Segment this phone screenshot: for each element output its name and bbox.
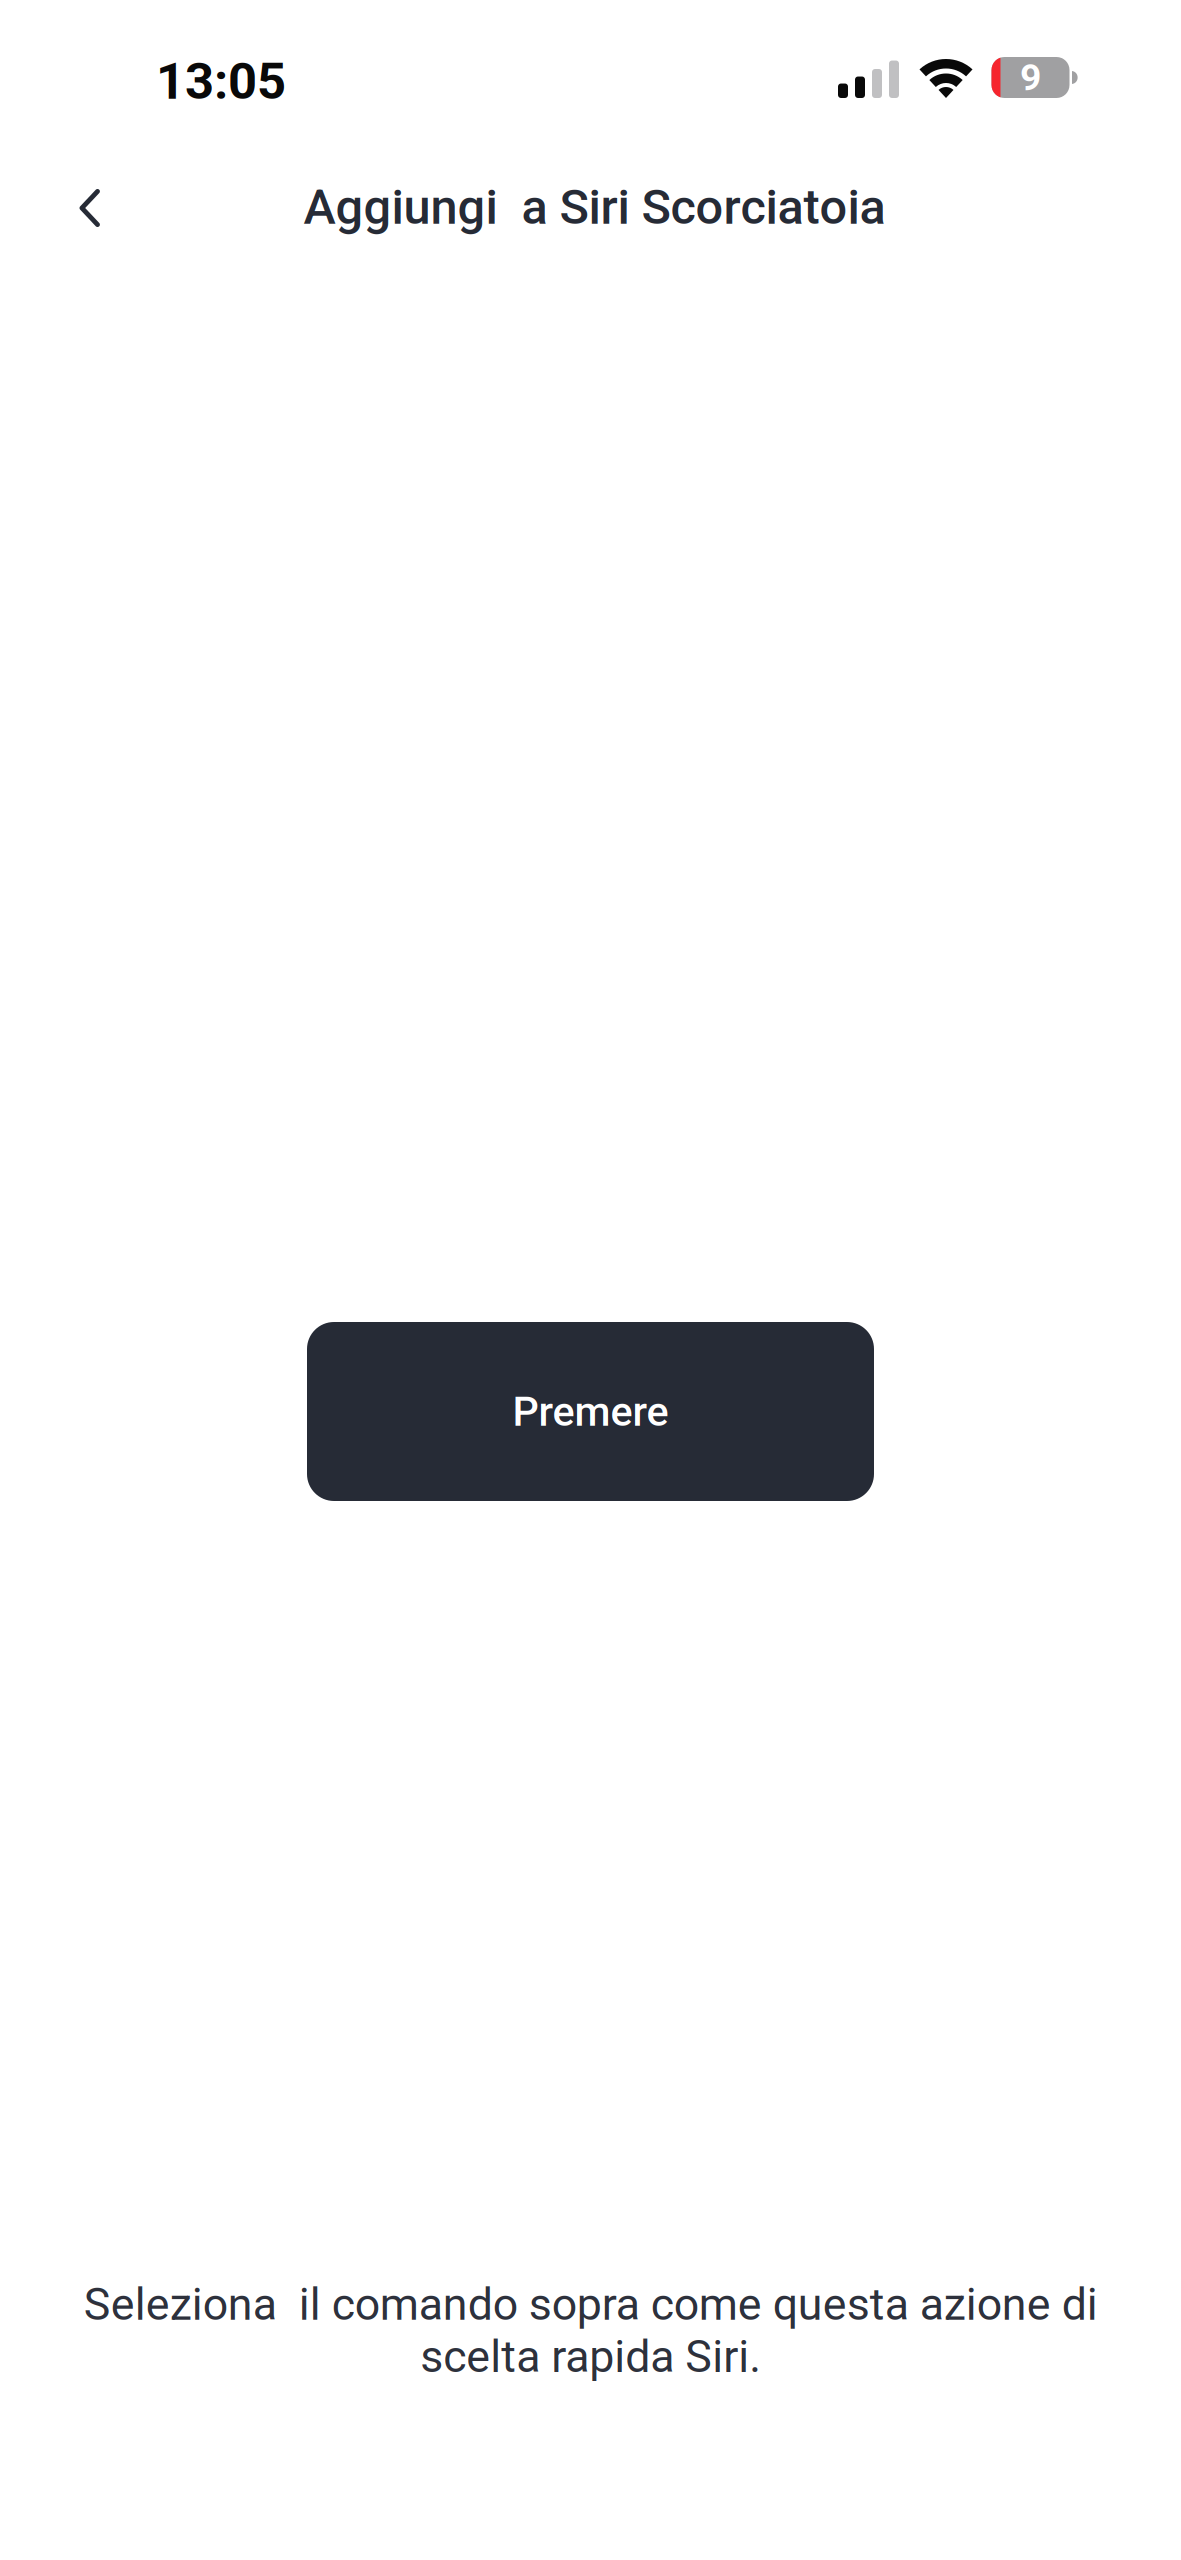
staticText: Aggiungi a Siri Scorciatoia [303, 178, 885, 235]
staticText: 9 [1020, 56, 1041, 99]
staticText: Seleziona il comando sopra come questa a… [83, 2278, 1097, 2383]
button[interactable]: Premere [307, 1322, 874, 1501]
staticText: 13:05 [156, 53, 286, 110]
button[interactable]: Back [41, 161, 137, 253]
staticText: Premere [512, 1388, 668, 1435]
